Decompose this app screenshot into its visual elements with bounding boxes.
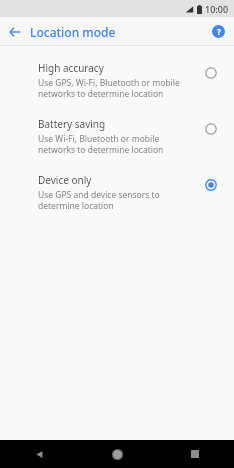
- staticText: 10:00: [205, 3, 229, 15]
- button[interactable]: Battery saving: [0, 108, 234, 164]
- button[interactable]: Home: [78, 440, 156, 468]
- staticText: Use GPS and device sensors to determine …: [38, 189, 194, 211]
- staticText: High accuracy: [38, 61, 104, 75]
- button[interactable]: Recents: [156, 440, 234, 468]
- staticText: Use GPS, Wi-Fi, Bluetooth or mobile netw…: [38, 77, 194, 99]
- staticText: Battery saving: [38, 117, 106, 131]
- button[interactable]: High accuracy: [0, 52, 234, 108]
- button[interactable]: Help: [202, 17, 234, 46]
- staticText: Use Wi-Fi, Bluetooth or mobile networks …: [38, 133, 194, 155]
- staticText: Device only: [38, 173, 92, 187]
- staticText: Location mode: [30, 24, 116, 40]
- button[interactable]: Device only: [0, 164, 234, 220]
- staticText: ?: [217, 26, 221, 37]
- button[interactable]: Back: [0, 17, 30, 46]
- button[interactable]: Back: [0, 440, 78, 468]
